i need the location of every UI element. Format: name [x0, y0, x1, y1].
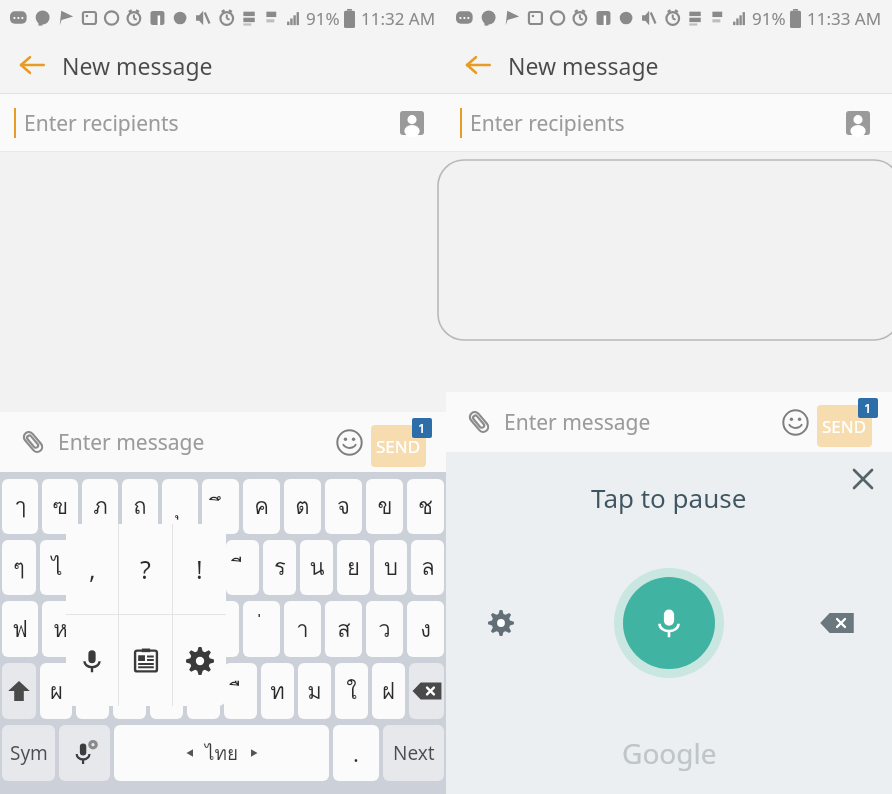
- button[interactable]: ห: [42, 601, 78, 657]
- button[interactable]: Voice typing: [66, 615, 118, 706]
- button[interactable]: ข: [366, 479, 403, 534]
- button[interactable]: Delete: [814, 600, 860, 646]
- button[interactable]: อ: [150, 663, 183, 719]
- staticText: ภ: [93, 489, 108, 524]
- staticText: ฟ: [12, 612, 28, 647]
- other: Clipboard: [133, 648, 159, 674]
- button[interactable]: บ: [374, 540, 407, 595]
- button[interactable]: ด: [122, 601, 158, 657]
- button[interactable]: ไทย: [114, 725, 329, 781]
- staticText: Enter recipients: [470, 109, 625, 138]
- button[interactable]: ฟ: [2, 601, 38, 657]
- staticText: New message: [508, 50, 659, 81]
- button[interactable]: Close: [842, 458, 884, 500]
- staticText: 1: [864, 399, 872, 417]
- button[interactable]: จ: [325, 479, 362, 534]
- button[interactable]: แ: [113, 663, 146, 719]
- staticText: Enter message: [58, 428, 205, 457]
- button[interactable]: เ: [162, 601, 198, 657]
- staticText: ย: [347, 550, 360, 585]
- button[interactable]: Add contact: [392, 103, 432, 143]
- button[interactable]: ใ: [335, 663, 368, 719]
- button[interactable]: Attach: [460, 403, 498, 441]
- button[interactable]: ช: [407, 479, 444, 534]
- button[interactable]: Voice input: [59, 725, 110, 781]
- button[interactable]: ก: [82, 601, 118, 657]
- button[interactable]: ไ: [40, 540, 74, 595]
- button[interactable]: ึ: [202, 479, 239, 534]
- button[interactable]: ถ: [122, 479, 158, 534]
- button[interactable]: SEND: [371, 425, 426, 467]
- button[interactable]: ิ: [187, 663, 220, 719]
- button[interactable]: ค: [243, 479, 280, 534]
- staticText: ง: [420, 612, 431, 647]
- button[interactable]: ่: [243, 601, 280, 657]
- button[interactable]: Emoji: [775, 402, 815, 442]
- button[interactable]: Attach: [14, 423, 52, 461]
- button[interactable]: Add contact: [838, 103, 878, 143]
- button[interactable]: ภ: [82, 479, 118, 534]
- button[interactable]: Microphone: [623, 577, 715, 669]
- button[interactable]: า: [284, 601, 321, 657]
- button[interactable]: ฃ: [42, 479, 78, 534]
- button[interactable]: ?: [119, 524, 172, 614]
- button[interactable]: น: [300, 540, 333, 595]
- button[interactable]: ท: [261, 663, 294, 719]
- button[interactable]: Next: [383, 725, 444, 781]
- button[interactable]: ำ: [78, 540, 111, 595]
- staticText: ช: [418, 489, 433, 524]
- staticText: Tap to pause: [591, 480, 747, 515]
- staticText: ถ: [133, 489, 147, 524]
- button[interactable]: Shift: [2, 663, 36, 719]
- button[interactable]: ง: [407, 601, 444, 657]
- button[interactable]: ๆ: [2, 540, 36, 595]
- button[interactable]: ๅ: [2, 479, 38, 534]
- button[interactable]: ม: [298, 663, 331, 719]
- button[interactable]: ั: [189, 540, 222, 595]
- staticText: ะ: [163, 550, 175, 585]
- button[interactable]: ื: [224, 663, 257, 719]
- button[interactable]: ,: [66, 524, 118, 614]
- button[interactable]: ร: [263, 540, 296, 595]
- button[interactable]: Keyboard settings: [173, 615, 226, 706]
- staticText: ฃ: [52, 489, 68, 524]
- button[interactable]: ต: [284, 479, 321, 534]
- button[interactable]: ว: [366, 601, 403, 657]
- button[interactable]: Sym: [2, 725, 55, 781]
- staticText: ผ: [50, 674, 63, 709]
- button[interactable]: ุ: [162, 479, 198, 534]
- staticText: ต: [295, 489, 310, 524]
- other: Backspace: [822, 608, 852, 638]
- button[interactable]: ะ: [152, 540, 185, 595]
- button[interactable]: !: [173, 524, 226, 614]
- other: Shift: [7, 679, 31, 703]
- button[interactable]: Backspace: [409, 663, 444, 719]
- staticText: New message: [62, 50, 213, 81]
- button[interactable]: ี: [226, 540, 259, 595]
- button[interactable]: ล: [411, 540, 444, 595]
- staticText: Next: [393, 740, 435, 766]
- button[interactable]: Back: [456, 43, 500, 87]
- staticText: จ: [337, 489, 350, 524]
- staticText: ร: [274, 550, 286, 585]
- button[interactable]: ้: [202, 601, 239, 657]
- button[interactable]: Settings: [478, 600, 524, 646]
- button[interactable]: พ: [115, 540, 148, 595]
- button[interactable]: ผ: [40, 663, 72, 719]
- button[interactable]: SEND: [817, 405, 872, 447]
- button[interactable]: Back: [10, 43, 54, 87]
- staticText: ๅ: [15, 489, 26, 524]
- other: Backspace: [412, 676, 442, 706]
- other: Keyboard settings: [186, 647, 214, 675]
- button[interactable]: Clipboard: [119, 615, 172, 706]
- staticText: 1: [418, 419, 426, 437]
- staticText: ด: [133, 612, 148, 647]
- staticText: ว: [378, 612, 391, 647]
- button[interactable]: .: [333, 725, 379, 781]
- button[interactable]: ส: [325, 601, 362, 657]
- button[interactable]: Emoji: [329, 422, 369, 462]
- button[interactable]: ฝ: [372, 663, 405, 719]
- button[interactable]: ป: [76, 663, 109, 719]
- button[interactable]: ย: [337, 540, 370, 595]
